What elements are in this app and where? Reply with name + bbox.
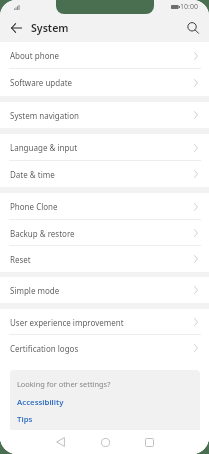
staticText: Date & time (10, 169, 55, 180)
staticText: System (31, 21, 69, 35)
staticText: Certification logos (10, 343, 79, 354)
button[interactable]: Reset (0, 246, 209, 272)
button[interactable]: Certification logos (0, 335, 209, 361)
staticText: Backup & restore (10, 228, 75, 239)
button[interactable]: Date & time (0, 161, 209, 187)
staticText: User experience improvement (10, 317, 124, 328)
staticText: About phone (10, 50, 59, 61)
staticText: Reset (10, 254, 31, 265)
button[interactable]: Back (47, 430, 73, 454)
staticText: Accessibility (17, 397, 64, 408)
staticText: Language & input (10, 142, 78, 153)
staticText: 10:00 (180, 2, 198, 12)
button[interactable]: Tips (10, 414, 200, 425)
button[interactable]: Back (3, 15, 29, 41)
button[interactable]: Language & input (0, 134, 209, 161)
button[interactable]: Simple mode (0, 277, 209, 303)
button[interactable]: System navigation (0, 102, 209, 128)
staticText: System navigation (10, 110, 79, 121)
button[interactable]: Accessibility (10, 397, 200, 408)
button[interactable]: Recent apps (136, 430, 162, 454)
staticText: Simple mode (10, 285, 60, 296)
staticText: Software update (10, 77, 73, 88)
staticText: Looking for other settings? (17, 379, 111, 389)
button[interactable]: Software update (0, 69, 209, 96)
button[interactable]: Search (180, 15, 206, 41)
staticText: Tips (17, 414, 33, 425)
button[interactable]: Home (92, 430, 118, 454)
button[interactable]: Phone Clone (0, 193, 209, 220)
button[interactable]: User experience improvement (0, 309, 209, 335)
staticText: Phone Clone (10, 201, 58, 212)
button[interactable]: Backup & restore (0, 220, 209, 246)
button[interactable]: About phone (0, 42, 209, 69)
